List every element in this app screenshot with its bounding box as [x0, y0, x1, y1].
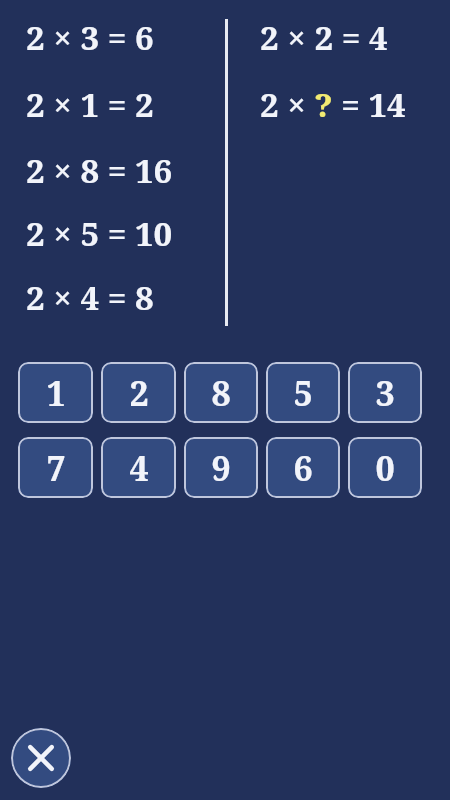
button[interactable]: 9 — [184, 437, 258, 498]
button[interactable]: 7 — [18, 437, 93, 498]
staticText: 4 — [129, 445, 149, 491]
staticText: 2 × 1 = 2 — [26, 82, 154, 127]
staticText: 8 — [211, 370, 231, 416]
button[interactable]: 3 — [348, 362, 422, 423]
button[interactable]: 5 — [266, 362, 340, 423]
staticText: 2 × 4 = 8 — [26, 275, 154, 320]
staticText: 2 × ? = 14 — [260, 82, 406, 127]
staticText: 2 × 2 = 4 — [260, 15, 388, 60]
staticText: 3 — [375, 370, 395, 416]
staticText: 5 — [293, 370, 313, 416]
staticText: 1 — [46, 370, 66, 416]
button[interactable]: 6 — [266, 437, 340, 498]
staticText: 0 — [375, 445, 395, 491]
staticText: 2 × 8 = 16 — [26, 148, 173, 193]
button[interactable]: 1 — [18, 362, 93, 423]
staticText: 9 — [211, 445, 231, 491]
button[interactable]: Close — [11, 728, 71, 788]
staticText: 2 — [129, 370, 149, 416]
button[interactable]: 0 — [348, 437, 422, 498]
button[interactable]: 8 — [184, 362, 258, 423]
button[interactable]: 4 — [101, 437, 176, 498]
staticText: 2 × 5 = 10 — [26, 211, 173, 256]
staticText: 2 × 3 = 6 — [26, 15, 154, 60]
staticText: 6 — [293, 445, 313, 491]
button[interactable]: 2 — [101, 362, 176, 423]
staticText: 7 — [46, 445, 66, 491]
